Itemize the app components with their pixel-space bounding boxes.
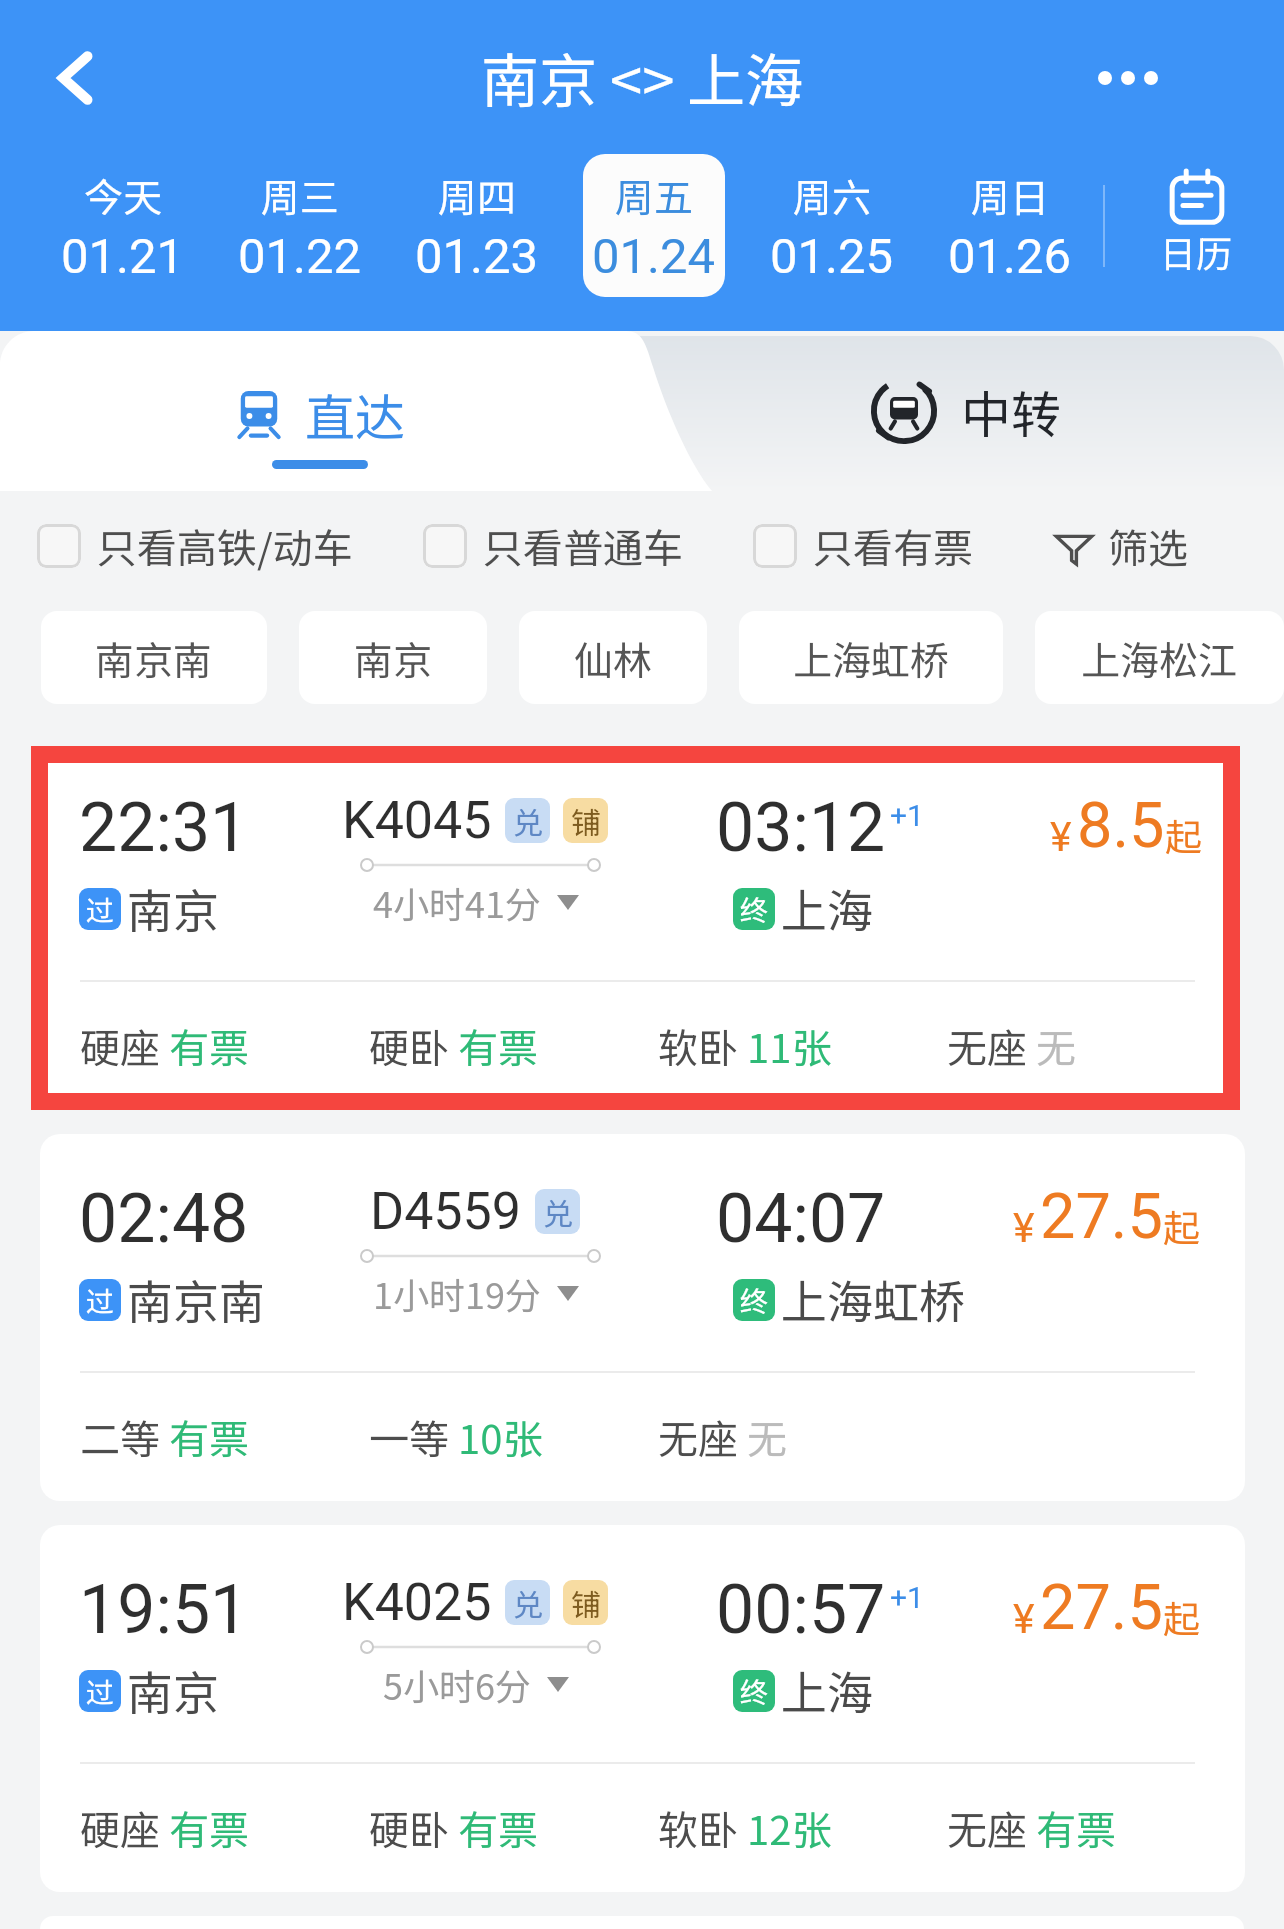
staticText: 软卧 (658, 1017, 738, 1075)
staticText: 上海虹桥 (793, 630, 950, 686)
staticText: 只看普通车 (483, 517, 683, 575)
staticText: 南京 <> 上海 (481, 35, 804, 119)
staticText: 二等 (80, 1408, 160, 1466)
button[interactable]: 日历 (1130, 149, 1262, 292)
staticText: 无座 (947, 1799, 1027, 1857)
staticText: 过 (86, 889, 115, 930)
staticText: 一等 (369, 1408, 449, 1466)
button[interactable]: 只看有票 (753, 517, 973, 575)
button[interactable]: 直达 (0, 331, 640, 491)
staticText: 南京南 (127, 1266, 265, 1333)
staticText: 起 (1163, 1590, 1200, 1644)
staticText: 4小时41分 (373, 876, 541, 928)
button[interactable]: 19:51 (40, 1525, 1245, 1892)
staticText: 04:07 (716, 1179, 886, 1259)
staticText: 有票 (169, 1799, 249, 1857)
staticText: 11张 (747, 1017, 832, 1075)
button[interactable]: 周六 (761, 154, 903, 297)
button[interactable]: 02:48 (40, 1134, 1245, 1501)
button[interactable]: 中转 (640, 331, 1284, 491)
staticText: 19:51 (79, 1570, 249, 1650)
staticText: 南京 (354, 630, 433, 686)
staticText: ¥ (1050, 813, 1072, 861)
button[interactable]: 周三 (229, 154, 370, 297)
button[interactable]: 南京南 (41, 611, 267, 704)
staticText: 无 (1036, 1017, 1076, 1075)
staticText: 周三 (261, 167, 340, 223)
staticText: 硬座 (80, 1017, 160, 1075)
staticText: 01.24 (592, 228, 716, 285)
button[interactable]: 只看普通车 (423, 517, 683, 575)
staticText: 过 (86, 1280, 115, 1321)
staticText: 南京 (127, 1657, 219, 1724)
staticText: 仙林 (574, 630, 653, 686)
staticText: 硬卧 (369, 1799, 449, 1857)
button[interactable]: Back (30, 33, 120, 123)
staticText: 01.25 (770, 228, 894, 285)
staticText: 有票 (169, 1017, 249, 1075)
staticText: 周日 (971, 167, 1050, 223)
button[interactable]: 周四 (406, 154, 547, 297)
staticText: 上海 (781, 875, 873, 942)
staticText: 铺 (571, 799, 601, 842)
button[interactable]: 周五 (583, 154, 725, 297)
staticText: 终 (740, 1280, 769, 1321)
staticText: 直达 (305, 378, 405, 450)
staticText: 有票 (169, 1408, 249, 1466)
staticText: 27.5 (1040, 1180, 1163, 1254)
staticText: 南京 (127, 875, 219, 942)
staticText: 无座 (658, 1408, 738, 1466)
staticText: 南京南 (95, 630, 213, 686)
staticText: 01.26 (948, 228, 1072, 285)
button[interactable]: 上海松江 (1035, 611, 1284, 704)
staticText: 27.5 (1040, 1571, 1163, 1645)
button[interactable]: 今天 (52, 154, 193, 297)
button[interactable]: 上海虹桥 (739, 611, 1003, 704)
staticText: 中转 (961, 375, 1061, 447)
staticText: K4025 (342, 1572, 492, 1633)
staticText: 12张 (747, 1799, 832, 1857)
staticText: D4559 (370, 1181, 522, 1242)
staticText: 无 (747, 1408, 787, 1466)
staticText: 周六 (793, 167, 872, 223)
staticText: 只看高铁/动车 (97, 517, 353, 575)
staticText: +1 (890, 798, 924, 833)
button[interactable]: 南京 (299, 611, 487, 704)
staticText: 兑 (513, 1581, 543, 1624)
staticText: 01.21 (61, 228, 185, 285)
button[interactable]: 22:31 (40, 755, 1231, 1101)
staticText: 22:31 (79, 788, 249, 868)
staticText: 硬座 (80, 1799, 160, 1857)
button[interactable]: 周日 (939, 154, 1081, 297)
staticText: 有票 (458, 1017, 538, 1075)
button[interactable]: More options (1093, 43, 1163, 113)
staticText: 周五 (615, 167, 694, 223)
staticText: 只看有票 (813, 517, 973, 575)
staticText: 硬卧 (369, 1017, 449, 1075)
staticText: 过 (86, 1671, 115, 1712)
staticText: 起 (1165, 808, 1202, 862)
staticText: 无座 (947, 1017, 1027, 1075)
staticText: 10张 (458, 1408, 543, 1466)
staticText: 上海松江 (1081, 630, 1238, 686)
staticText: 上海虹桥 (781, 1266, 965, 1333)
button[interactable]: 筛选 (1054, 517, 1188, 575)
staticText: 有票 (1036, 1799, 1116, 1857)
staticText: 8.5 (1077, 789, 1165, 863)
staticText: 02:48 (79, 1179, 249, 1259)
staticText: 软卧 (658, 1799, 738, 1857)
staticText: 铺 (571, 1581, 601, 1624)
staticText: 日历 (1160, 225, 1233, 277)
staticText: 上海 (781, 1657, 873, 1724)
staticText: 兑 (543, 1190, 573, 1233)
staticText: 终 (740, 1671, 769, 1712)
staticText: +1 (890, 1580, 924, 1615)
button[interactable]: 只看高铁/动车 (37, 517, 353, 575)
staticText: 01.23 (415, 228, 539, 285)
staticText: 周四 (438, 167, 517, 223)
staticText: 今天 (84, 167, 163, 223)
staticText: 兑 (513, 799, 543, 842)
staticText: 5小时6分 (383, 1658, 531, 1710)
button[interactable]: 仙林 (519, 611, 707, 704)
staticText: 有票 (458, 1799, 538, 1857)
